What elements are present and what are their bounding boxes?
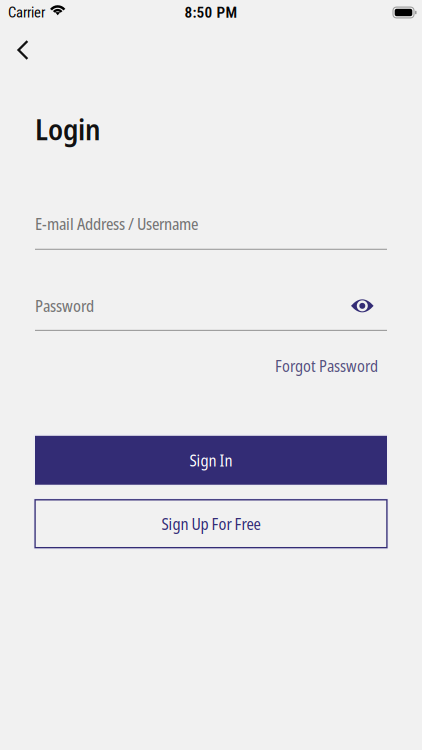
staticText: Password	[35, 295, 94, 317]
button[interactable]: Sign In	[35, 436, 387, 485]
staticText: Sign Up For Free	[161, 513, 260, 535]
staticText: Forgot Password	[275, 355, 378, 377]
button[interactable]: Forgot Password	[275, 355, 378, 377]
button[interactable]: Sign Up For Free	[35, 500, 387, 548]
staticText: E-mail Address / Username	[35, 213, 198, 235]
button[interactable]: Show password	[351, 294, 387, 318]
staticText: 8:50 PM	[184, 3, 237, 21]
staticText: Carrier	[8, 4, 45, 21]
button[interactable]: Back	[1, 28, 45, 72]
staticText: Sign In	[189, 449, 232, 471]
staticText: Login	[35, 109, 101, 149]
